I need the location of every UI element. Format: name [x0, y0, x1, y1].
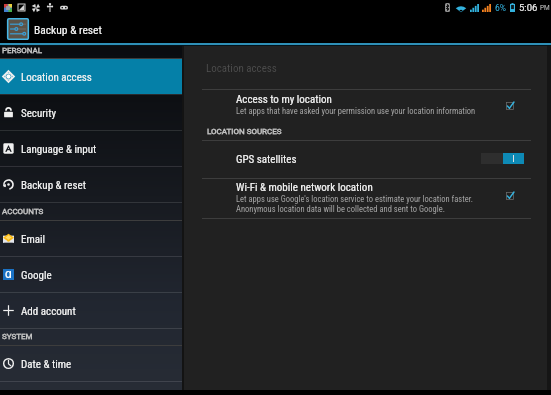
staticText: Backup & reset — [34, 23, 102, 36]
staticText: Google — [21, 269, 52, 282]
staticText: LOCATION SOURCES — [207, 127, 282, 136]
staticText: Security — [21, 107, 56, 120]
button[interactable]: Add account — [0, 293, 182, 328]
staticText: Wi-Fi & mobile network location — [236, 181, 373, 194]
button[interactable]: Date & time — [0, 346, 182, 381]
staticText: Backup & reset — [21, 179, 86, 192]
button[interactable]: Language & input — [0, 131, 182, 166]
button[interactable]: Toggle setting — [505, 101, 515, 111]
staticText: Email — [21, 233, 46, 246]
staticText: Location access — [206, 62, 277, 75]
button[interactable]: g — [0, 257, 182, 292]
staticText: PM — [540, 4, 550, 12]
button[interactable]: Access to my location — [184, 90, 547, 117]
staticText: Language & input — [21, 143, 97, 156]
staticText: Date & time — [21, 358, 72, 371]
staticText: Add account — [21, 305, 76, 318]
button[interactable]: Security — [0, 95, 182, 130]
button[interactable]: Backup & reset — [0, 167, 182, 202]
button[interactable]: Location access — [0, 59, 182, 94]
button[interactable]: Toggle setting — [505, 191, 515, 201]
staticText: Location access — [21, 71, 92, 84]
button[interactable]: GPS satellites toggle — [481, 153, 524, 164]
button[interactable]: GPS satellites — [184, 141, 547, 178]
staticText: Let apps that have asked your permission… — [236, 106, 476, 116]
staticText: Let apps use Google's location service t… — [236, 194, 474, 204]
staticText: Access to my location — [236, 93, 332, 106]
staticText: 6% — [495, 3, 507, 13]
staticText: g — [5, 267, 12, 278]
staticText: 5:06 — [519, 2, 538, 13]
button[interactable]: Wi-Fi & mobile network location — [184, 179, 547, 218]
staticText: Anonymous location data will be collecte… — [236, 204, 445, 214]
button[interactable]: Settings — [6, 17, 30, 41]
staticText: ACCOUNTS — [2, 207, 44, 216]
staticText: SYSTEM — [2, 332, 33, 341]
button[interactable]: Email — [0, 221, 182, 256]
staticText: GPS satellites — [236, 153, 297, 166]
staticText: PERSONAL — [2, 46, 43, 54]
